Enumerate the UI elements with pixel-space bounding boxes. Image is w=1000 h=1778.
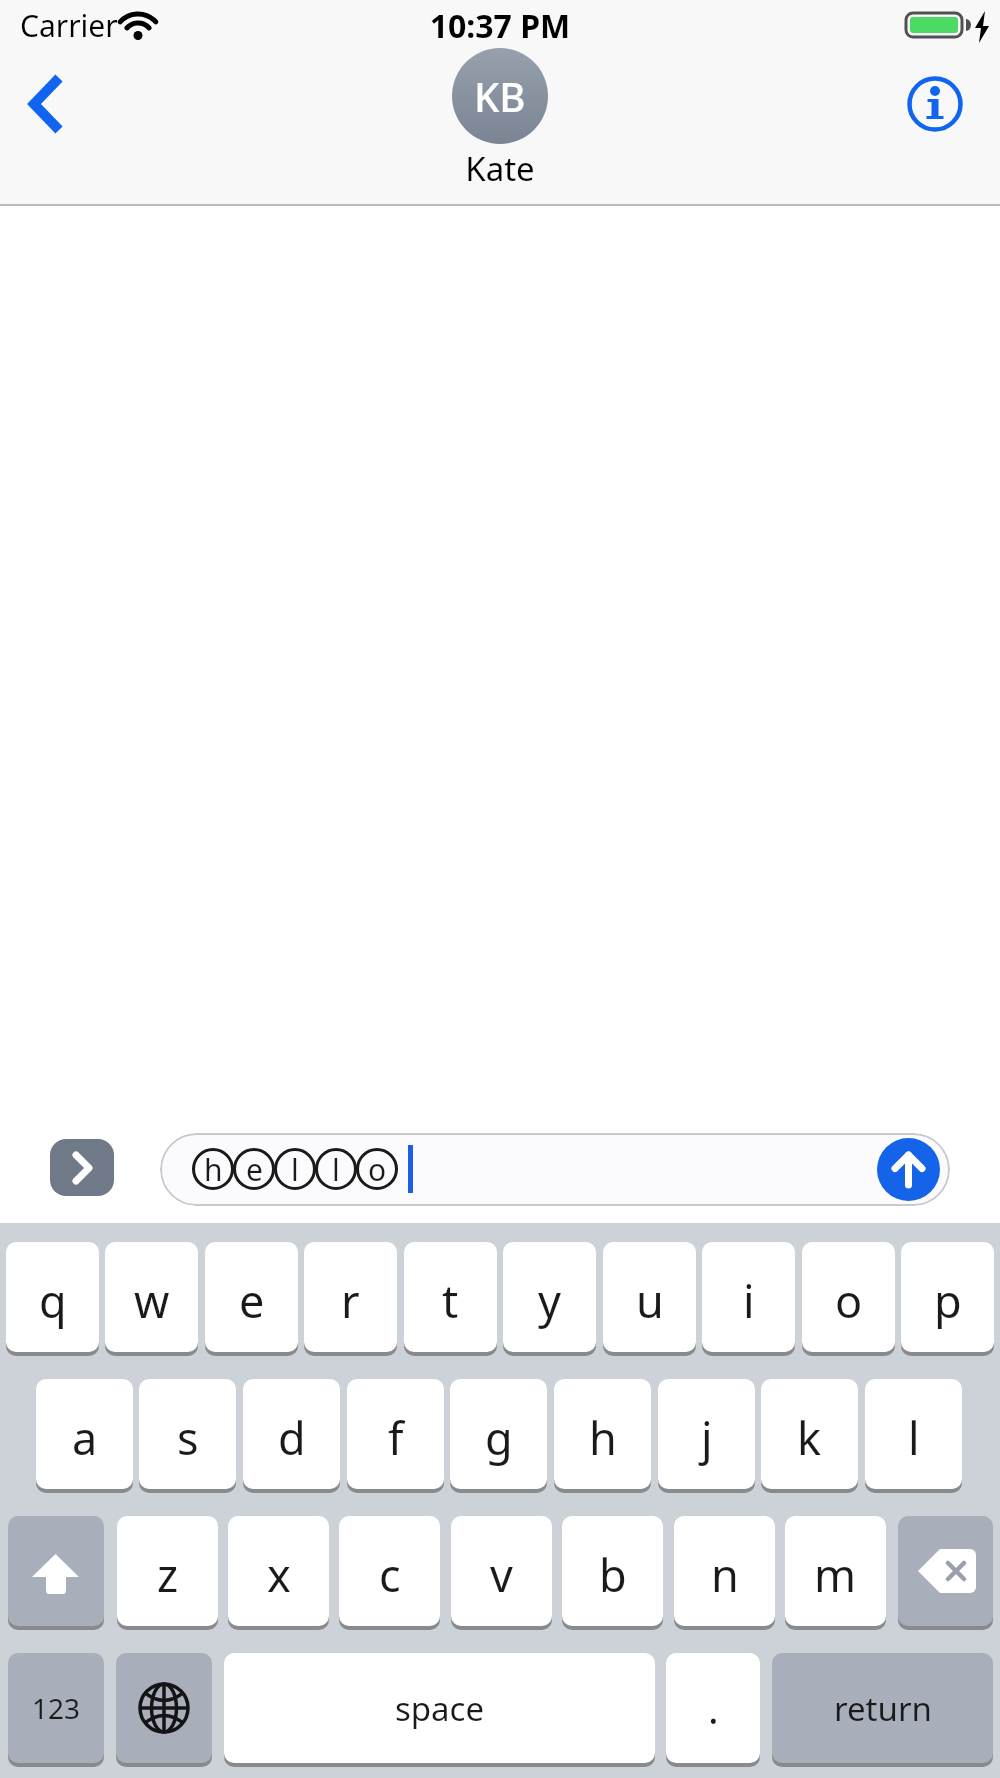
button[interactable] <box>14 68 80 140</box>
button[interactable]: r <box>304 1242 397 1352</box>
staticText: Carrier <box>20 5 118 46</box>
button[interactable]: KB <box>452 48 548 144</box>
staticText: k <box>797 1407 822 1468</box>
staticText: a <box>72 1407 98 1468</box>
staticText: m <box>814 1544 857 1605</box>
button[interactable]: l <box>865 1379 962 1489</box>
button[interactable]: k <box>761 1379 858 1489</box>
staticText: y <box>538 1270 561 1331</box>
button[interactable]: m <box>785 1516 886 1626</box>
staticText: . <box>708 1681 719 1735</box>
button[interactable]: space <box>224 1653 655 1763</box>
button[interactable]: o <box>802 1242 895 1352</box>
button[interactable]: 123 <box>8 1653 104 1763</box>
button[interactable]: s <box>139 1379 236 1489</box>
staticText: v <box>490 1544 513 1605</box>
button[interactable]: t <box>404 1242 497 1352</box>
button[interactable]: y <box>503 1242 596 1352</box>
button[interactable] <box>900 69 970 139</box>
button[interactable]: e <box>205 1242 298 1352</box>
button[interactable]: i <box>702 1242 795 1352</box>
button[interactable]: g <box>450 1379 547 1489</box>
staticText: h <box>589 1407 617 1468</box>
button[interactable]: j <box>658 1379 755 1489</box>
button[interactable]: v <box>451 1516 552 1626</box>
button[interactable]: z <box>117 1516 218 1626</box>
staticText: q <box>39 1270 67 1331</box>
staticText: n <box>711 1544 739 1605</box>
staticText: o <box>368 1149 387 1190</box>
staticText: g <box>485 1407 513 1468</box>
staticText: t <box>442 1270 459 1331</box>
staticText: i <box>743 1270 755 1331</box>
staticText: 10:37 PM <box>0 4 1000 48</box>
button[interactable] <box>116 1653 212 1763</box>
button[interactable]: u <box>603 1242 696 1352</box>
staticText: l <box>332 1149 340 1190</box>
staticText: p <box>934 1270 962 1331</box>
staticText: 123 <box>32 1689 81 1727</box>
staticText: d <box>278 1407 306 1468</box>
staticText: s <box>177 1407 199 1468</box>
staticText: o <box>835 1270 863 1331</box>
button[interactable] <box>898 1516 993 1626</box>
staticText: w <box>134 1270 170 1331</box>
button[interactable] <box>50 1139 114 1196</box>
staticText: return <box>834 1686 932 1731</box>
button[interactable]: f <box>347 1379 444 1489</box>
button[interactable]: . <box>666 1653 760 1763</box>
button[interactable]: a <box>36 1379 133 1489</box>
button[interactable]: d <box>243 1379 340 1489</box>
staticText: e <box>239 1270 265 1331</box>
button[interactable]: p <box>901 1242 994 1352</box>
staticText: KB <box>474 69 526 123</box>
staticText: Kate <box>0 146 1000 191</box>
staticText: b <box>599 1544 627 1605</box>
staticText: h <box>204 1149 223 1190</box>
staticText: u <box>636 1270 664 1331</box>
button[interactable]: c <box>339 1516 440 1626</box>
staticText: e <box>246 1149 263 1190</box>
staticText: l <box>291 1149 299 1190</box>
staticText: z <box>157 1544 179 1605</box>
staticText: f <box>388 1407 404 1468</box>
button[interactable] <box>160 1133 950 1206</box>
staticText: j <box>701 1407 713 1468</box>
button[interactable]: n <box>674 1516 775 1626</box>
staticText: space <box>395 1686 485 1731</box>
button[interactable]: w <box>105 1242 198 1352</box>
button[interactable]: h <box>554 1379 651 1489</box>
staticText: l <box>908 1407 920 1468</box>
button[interactable]: return <box>772 1653 993 1763</box>
staticText: c <box>379 1544 401 1605</box>
staticText: r <box>341 1270 360 1331</box>
button[interactable] <box>877 1138 940 1201</box>
button[interactable]: b <box>562 1516 663 1626</box>
button[interactable] <box>8 1516 104 1626</box>
button[interactable]: x <box>228 1516 329 1626</box>
staticText: x <box>267 1544 291 1605</box>
button[interactable]: q <box>6 1242 99 1352</box>
